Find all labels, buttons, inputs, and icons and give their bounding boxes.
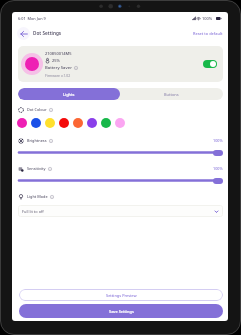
button[interactable]: Lights (18, 88, 120, 100)
staticText: Settings Preview (106, 293, 137, 298)
button[interactable]: Colour option 2 (31, 118, 41, 128)
button[interactable]: Reset to default (192, 29, 224, 38)
staticText: Dot Colour (27, 107, 47, 112)
staticText: Lights (63, 92, 75, 97)
staticText: 100% (213, 166, 223, 171)
button[interactable]: Sensitivity slider (18, 177, 223, 184)
staticText: 6:01 Mon Jun 9 (18, 16, 46, 21)
button[interactable]: Colour option 5 (73, 118, 83, 128)
button[interactable]: Light mode selection (18, 205, 223, 217)
staticText: Save Settings (109, 309, 134, 314)
staticText: Light Mode (27, 194, 48, 199)
button[interactable]: Colour option 8 (115, 118, 125, 128)
staticText: Battery Saver (45, 65, 72, 71)
button[interactable]: Battery saver toggle (203, 60, 217, 68)
button[interactable]: 210850014M5 (18, 46, 223, 82)
staticText: Brightness (27, 138, 47, 143)
button[interactable]: Buttons (120, 88, 223, 100)
button[interactable]: Colour option 3 (45, 118, 55, 128)
button[interactable]: Brightness slider (18, 149, 223, 156)
button[interactable]: Settings Preview (19, 289, 223, 301)
staticText: Reset to default (193, 31, 223, 36)
button[interactable]: Colour option 6 (87, 118, 97, 128)
staticText: 100% (202, 16, 213, 21)
button[interactable]: Colour option 4 (59, 118, 69, 128)
button[interactable]: Colour option 1 (17, 118, 27, 128)
staticText: Sensitivity (27, 166, 46, 171)
button[interactable]: Save Settings (19, 304, 223, 318)
staticText: Dot Settings (33, 30, 62, 36)
staticText: Firmware v.1.02 (45, 73, 71, 78)
button[interactable]: Colour option 7 (101, 118, 111, 128)
staticText: 100% (213, 138, 223, 143)
staticText: Buttons (164, 92, 179, 97)
staticText: Full lit to off (22, 209, 44, 214)
staticText: 25% (52, 58, 60, 63)
staticText: 210850014M5 (45, 51, 72, 56)
button[interactable]: Back (17, 27, 30, 40)
